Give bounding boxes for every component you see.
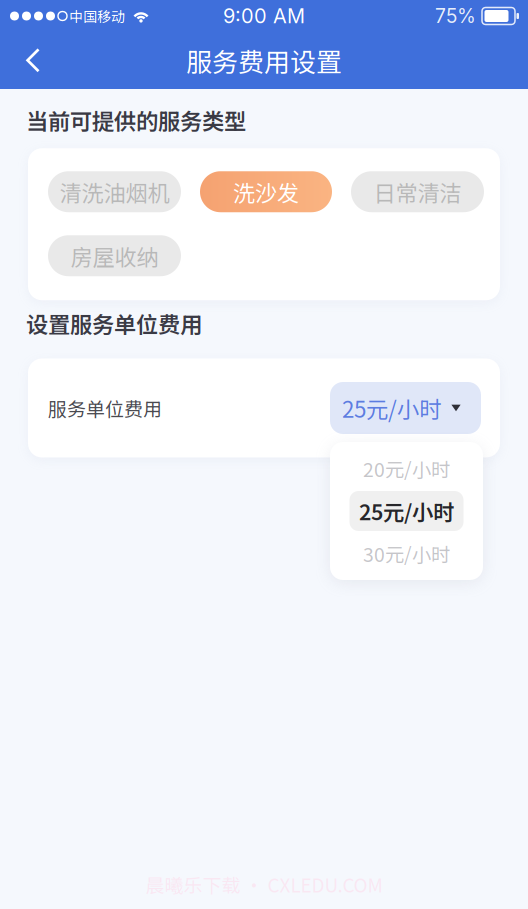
- button[interactable]: 日常清洁: [351, 171, 484, 212]
- button[interactable]: 20元/小时: [330, 446, 483, 491]
- button[interactable]: 25元/小时: [330, 382, 481, 434]
- staticText: 中国移动: [69, 6, 125, 26]
- staticText: 清洗油烟机: [59, 176, 169, 208]
- staticText: 洗沙发: [233, 176, 299, 208]
- staticText: 75%: [435, 4, 476, 28]
- staticText: 日常清洁: [373, 176, 461, 208]
- staticText: 设置服务单位费用: [26, 307, 202, 339]
- button[interactable]: 30元/小时: [330, 531, 483, 576]
- staticText: 20元/小时: [363, 454, 450, 482]
- button[interactable]: 房屋收纳: [48, 235, 181, 276]
- staticText: 晨曦乐下载 · CXLEDU.COM: [145, 871, 382, 898]
- staticText: 房屋收纳: [70, 240, 158, 272]
- staticText: 当前可提供的服务类型: [26, 104, 246, 136]
- button[interactable]: 清洗油烟机: [48, 171, 181, 212]
- staticText: 9:00 AM: [223, 4, 305, 28]
- staticText: 30元/小时: [363, 539, 450, 567]
- staticText: 服务费用设置: [186, 42, 342, 79]
- button[interactable]: 25元/小时: [349, 491, 463, 531]
- staticText: 服务单位费用: [48, 394, 162, 422]
- button[interactable]: 洗沙发: [200, 171, 332, 212]
- staticText: 25元/小时: [359, 496, 454, 526]
- staticText: 25元/小时: [342, 392, 441, 424]
- button[interactable]: Back: [0, 35, 58, 86]
